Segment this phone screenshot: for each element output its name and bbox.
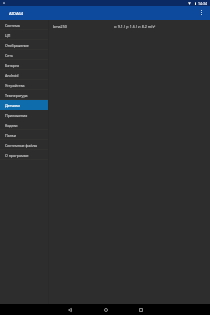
button[interactable]: Устройства [0, 80, 48, 90]
staticText: Системные файлы [5, 143, 38, 148]
staticText: x: 9.1 / y: 1.6 / z: 8.2 m/s² [114, 24, 156, 29]
button[interactable]: ЦП [0, 30, 48, 40]
staticText: Приложения [5, 113, 28, 118]
button[interactable]: Температура [0, 90, 48, 100]
button[interactable]: Отображение [0, 40, 48, 50]
button[interactable]: Системные файлы [0, 140, 48, 150]
button[interactable]: Android [0, 70, 48, 80]
staticText: Сеть [5, 53, 13, 58]
button[interactable]: Папки [0, 130, 48, 140]
staticText: Android [5, 73, 19, 78]
staticText: Датчики [5, 103, 20, 108]
staticText: Устройства [5, 83, 25, 88]
button[interactable]: Кодеки [0, 120, 48, 130]
button[interactable]: bma250 [49, 20, 210, 32]
staticText: Кодеки [5, 123, 18, 128]
staticText: О программе [5, 153, 29, 158]
staticText: 14:34 [198, 1, 207, 6]
staticText: AIDA64 [9, 11, 24, 16]
staticText: bma250 [53, 24, 67, 29]
button[interactable]: More options [194, 6, 208, 20]
button[interactable]: Система [0, 20, 48, 30]
staticText: ЦП [5, 33, 11, 38]
button[interactable]: Home [98, 304, 113, 315]
button[interactable]: О программе [0, 150, 48, 160]
button[interactable]: Recents [133, 304, 148, 315]
button[interactable]: Приложения [0, 110, 48, 120]
staticText: Отображение [5, 43, 29, 48]
staticText: Папки [5, 133, 16, 138]
button[interactable]: Батарея [0, 60, 48, 70]
staticText: Система [5, 23, 20, 28]
button[interactable]: Сеть [0, 50, 48, 60]
staticText: Температура [5, 93, 28, 98]
button[interactable]: Датчики [0, 100, 48, 110]
button[interactable]: Back [62, 304, 77, 315]
staticText: Батарея [5, 63, 20, 68]
